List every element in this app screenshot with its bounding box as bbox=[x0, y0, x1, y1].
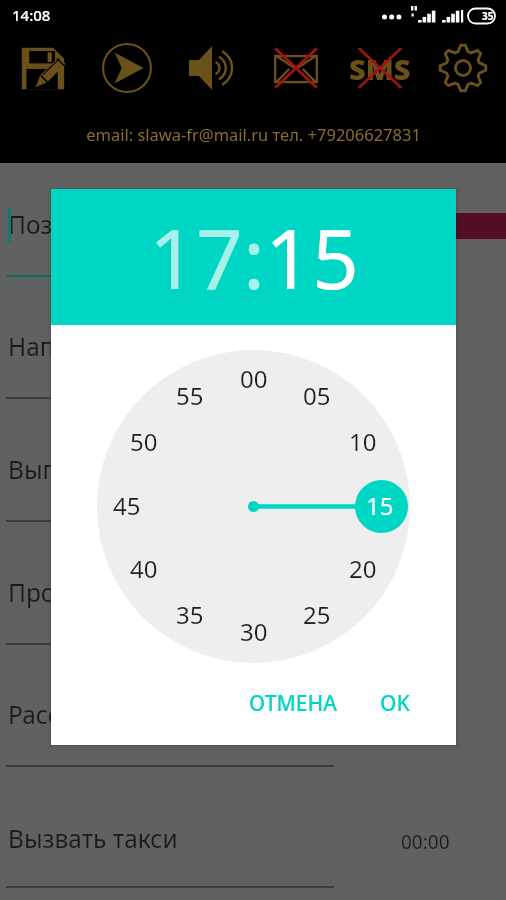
button[interactable]: OK bbox=[364, 679, 426, 727]
button[interactable]: Save bbox=[5, 30, 81, 106]
staticText: OK bbox=[380, 689, 410, 718]
staticText: 25 bbox=[303, 598, 331, 631]
staticText: ОТМЕНА bbox=[249, 689, 337, 718]
staticText: 00:00 bbox=[401, 829, 450, 855]
staticText: 17 bbox=[149, 201, 243, 313]
staticText: Позиция bbox=[8, 208, 113, 241]
staticText: 14:08 bbox=[12, 5, 51, 25]
button[interactable] bbox=[0, 330, 506, 452]
button[interactable]: 15 bbox=[265, 201, 359, 313]
staticText: 05 bbox=[303, 379, 331, 412]
staticText: Вызвать такси bbox=[8, 822, 178, 855]
button[interactable] bbox=[0, 453, 506, 575]
button[interactable] bbox=[0, 698, 506, 820]
button[interactable]: Settings bbox=[425, 30, 501, 106]
button[interactable]: Navigate bbox=[89, 30, 165, 106]
button[interactable]: SMS disabled bbox=[342, 30, 418, 106]
button[interactable] bbox=[0, 576, 506, 698]
staticText: Расстояние bbox=[8, 698, 144, 731]
staticText: email: slawa-fr@mail.ru тел. +7920662783… bbox=[86, 123, 421, 145]
button[interactable]: ОТМЕНА bbox=[234, 679, 352, 727]
button[interactable] bbox=[0, 208, 506, 330]
staticText: 00 bbox=[240, 362, 268, 395]
button[interactable] bbox=[0, 820, 506, 900]
staticText: 40 bbox=[130, 552, 158, 585]
button[interactable]: Email disabled bbox=[258, 30, 334, 106]
button[interactable]: Minutes clock face bbox=[97, 350, 410, 663]
staticText: 45 bbox=[113, 489, 141, 522]
staticText: 10 bbox=[349, 425, 377, 458]
staticText: Простой bbox=[8, 576, 109, 609]
staticText: 55 bbox=[176, 379, 204, 412]
staticText: 15 bbox=[265, 201, 359, 313]
staticText: Направление bbox=[8, 330, 169, 363]
button[interactable]: Sound bbox=[174, 30, 250, 106]
staticText: 50 bbox=[130, 425, 158, 458]
staticText: 15 bbox=[366, 489, 394, 522]
staticText: 35 bbox=[482, 9, 494, 23]
staticText: 20 bbox=[349, 552, 377, 585]
staticText: 35 bbox=[176, 598, 204, 631]
button[interactable]: 17 bbox=[149, 201, 243, 313]
staticText: : bbox=[243, 201, 265, 313]
staticText: 30 bbox=[240, 615, 268, 648]
staticText: SMS bbox=[349, 49, 411, 88]
staticText: Выгрузка bbox=[8, 453, 118, 486]
